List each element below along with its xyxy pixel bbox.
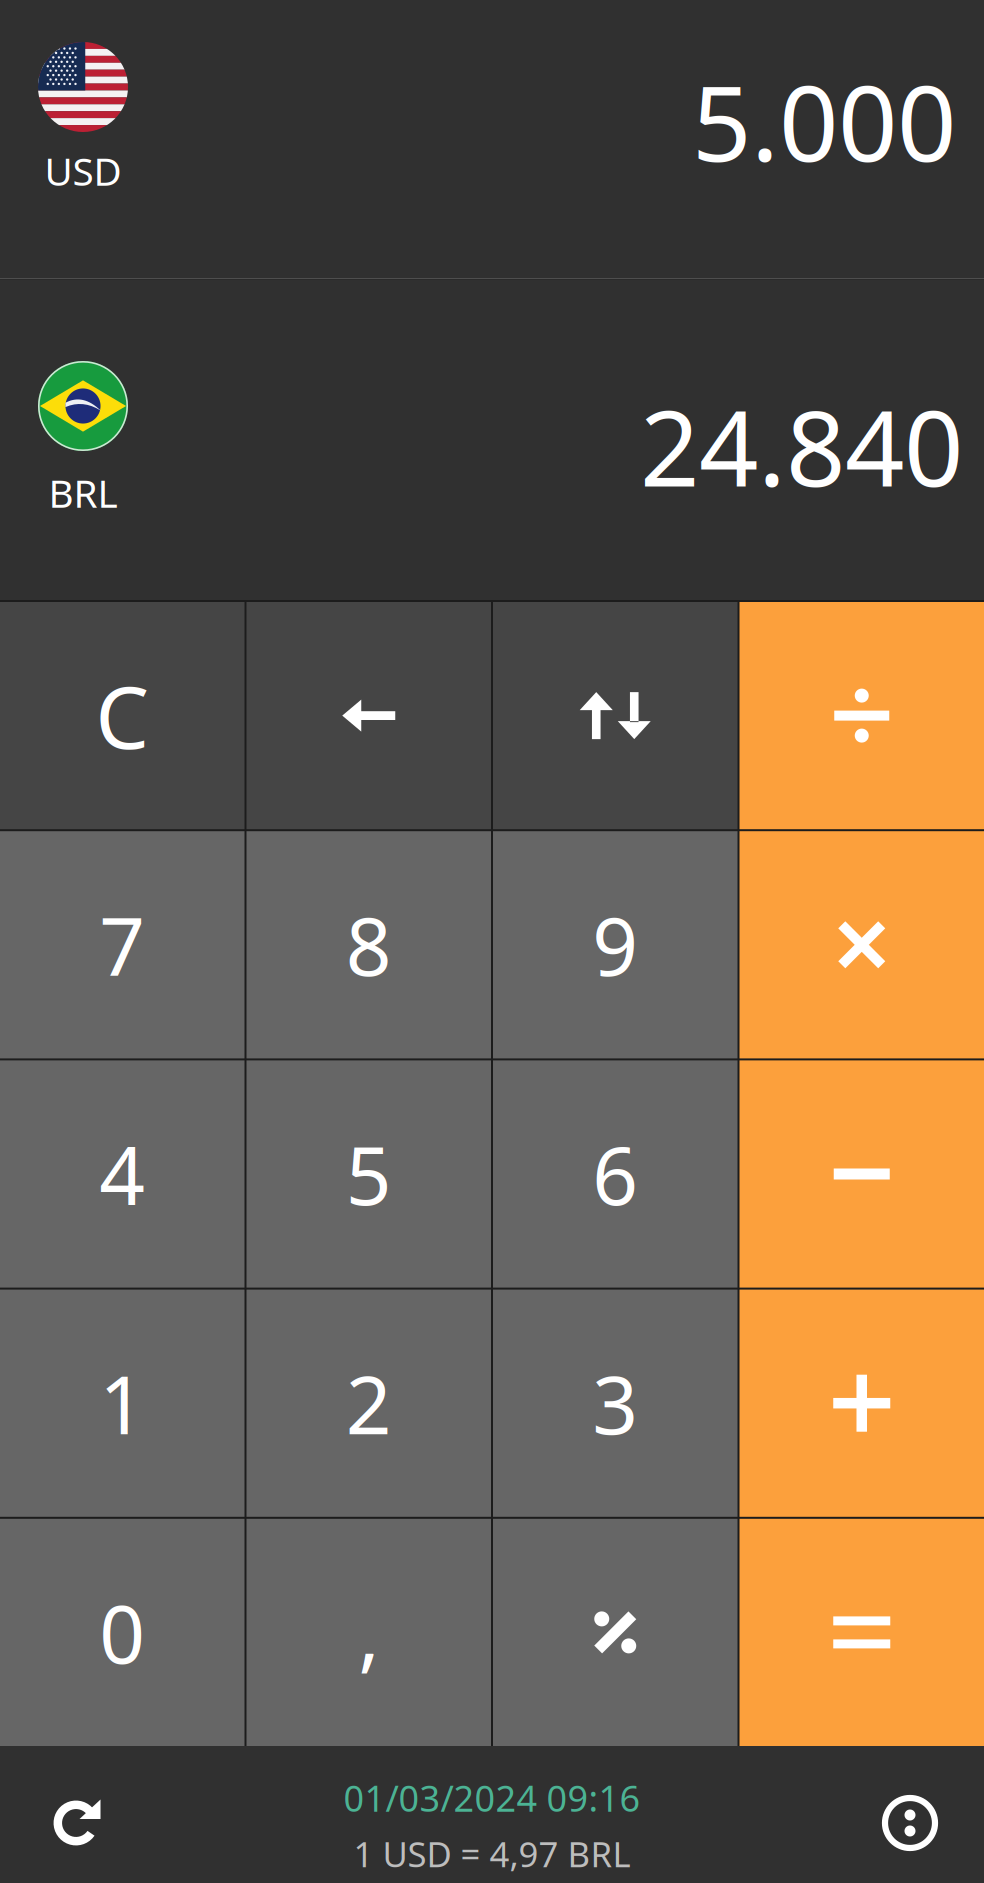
button[interactable]: 6 (493, 1060, 737, 1288)
staticText: USD (44, 145, 121, 196)
button[interactable]: 3 (493, 1290, 737, 1517)
staticText: 7 (99, 892, 145, 998)
staticText: 9 (592, 892, 638, 998)
staticText: 4 (99, 1121, 145, 1227)
staticText: 3 (592, 1350, 638, 1456)
button[interactable]: Refresh exchange rate (0, 1746, 208, 1883)
button[interactable]: To BRL, amount 24.840 (0, 280, 984, 600)
button[interactable]: Minus (739, 1060, 984, 1288)
staticText: , (358, 1579, 379, 1685)
button[interactable]: Divide (739, 602, 984, 829)
staticText: 1 (99, 1350, 145, 1456)
button[interactable]: From USD, amount 5.000 (0, 0, 984, 278)
button[interactable]: Percent (493, 1519, 737, 1746)
button[interactable]: 8 (246, 831, 491, 1058)
button[interactable]: Clear (0, 602, 244, 829)
button[interactable]: Decimal comma (246, 1519, 491, 1746)
staticText: 5.000 (692, 52, 956, 190)
staticText: 0 (99, 1579, 145, 1685)
button[interactable]: Backspace (246, 602, 491, 829)
button[interactable]: 1 (0, 1290, 244, 1517)
staticText: BRL (48, 467, 117, 518)
button[interactable]: 4 (0, 1060, 244, 1288)
button[interactable]: 2 (246, 1290, 491, 1517)
button[interactable]: Swap currencies (493, 602, 737, 829)
button[interactable]: More options (784, 1746, 984, 1883)
button[interactable]: Multiply (739, 831, 984, 1058)
button[interactable]: 9 (493, 831, 737, 1058)
button[interactable]: Plus (739, 1290, 984, 1517)
staticText: 24.840 (640, 377, 963, 515)
staticText: 2 (346, 1350, 392, 1456)
button[interactable]: 0 (0, 1519, 244, 1746)
staticText: 1 USD = 4,97 BRL (353, 1831, 630, 1877)
staticText: 6 (592, 1121, 638, 1227)
staticText: 01/03/2024 09:16 (343, 1774, 640, 1822)
button[interactable]: 7 (0, 831, 244, 1058)
staticText: C (95, 659, 149, 772)
button[interactable]: 5 (246, 1060, 491, 1288)
button[interactable]: Equals (739, 1519, 984, 1746)
staticText: 8 (346, 892, 392, 998)
staticText: 5 (346, 1121, 392, 1227)
